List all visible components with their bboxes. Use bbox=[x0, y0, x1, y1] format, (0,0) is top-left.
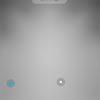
button[interactable]: Open in Maps bbox=[32, 0, 67, 4]
button[interactable]: Current location bbox=[7, 79, 15, 88]
button[interactable]: More options bbox=[57, 78, 65, 86]
staticText: Open in Maps bbox=[40, 0, 59, 1]
